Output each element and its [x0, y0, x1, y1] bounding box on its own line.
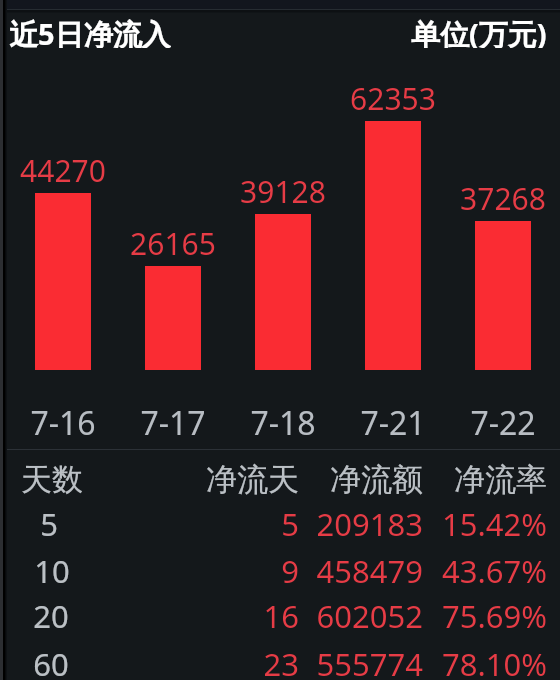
staticText: 44270 [20, 150, 106, 182]
staticText: 5 [40, 503, 58, 545]
button[interactable]: 20 [0, 593, 560, 639]
staticText: 75.69% [442, 595, 547, 637]
button[interactable]: 天数 [0, 456, 560, 502]
staticText: 62353 [350, 78, 436, 110]
button[interactable]: 37268 [448, 178, 558, 408]
staticText: 23 [263, 643, 299, 680]
staticText: 37268 [460, 178, 546, 210]
staticText: 39128 [240, 171, 326, 203]
staticText: 7-22 [470, 401, 536, 435]
staticText: 209183 [316, 503, 423, 545]
staticText: 近5日净流入 [9, 14, 171, 48]
staticText: 60 [33, 643, 69, 680]
staticText: 20 [33, 595, 69, 637]
staticText: 7-18 [250, 401, 316, 435]
staticText: 净流率 [454, 460, 547, 499]
staticText: 净流额 [330, 460, 423, 499]
staticText: 602052 [316, 595, 423, 637]
staticText: 16 [263, 595, 299, 637]
button[interactable]: 44270 [8, 150, 118, 408]
button[interactable]: 26165 [118, 223, 228, 408]
staticText: 净流天 [206, 460, 299, 499]
button[interactable]: 近5日净流入 [0, 13, 560, 47]
staticText: 10 [34, 550, 70, 592]
staticText: 15.42% [442, 503, 547, 545]
button[interactable]: 5 [0, 501, 560, 547]
button[interactable]: 10 [0, 548, 560, 594]
button[interactable]: 62353 [338, 78, 448, 408]
staticText: 7-16 [30, 401, 96, 435]
button[interactable]: 60 [0, 641, 560, 680]
button[interactable]: 39128 [228, 171, 338, 408]
staticText: 5 [281, 503, 299, 545]
staticText: 78.10% [442, 643, 547, 680]
staticText: 7-17 [140, 401, 206, 435]
staticText: 7-21 [360, 401, 426, 435]
staticText: 26165 [130, 223, 216, 255]
staticText: 天数 [21, 460, 83, 499]
staticText: 单位(万元) [411, 14, 547, 48]
staticText: 555774 [316, 643, 423, 680]
staticText: 458479 [316, 550, 423, 592]
staticText: 9 [281, 550, 299, 592]
staticText: 43.67% [442, 550, 547, 592]
